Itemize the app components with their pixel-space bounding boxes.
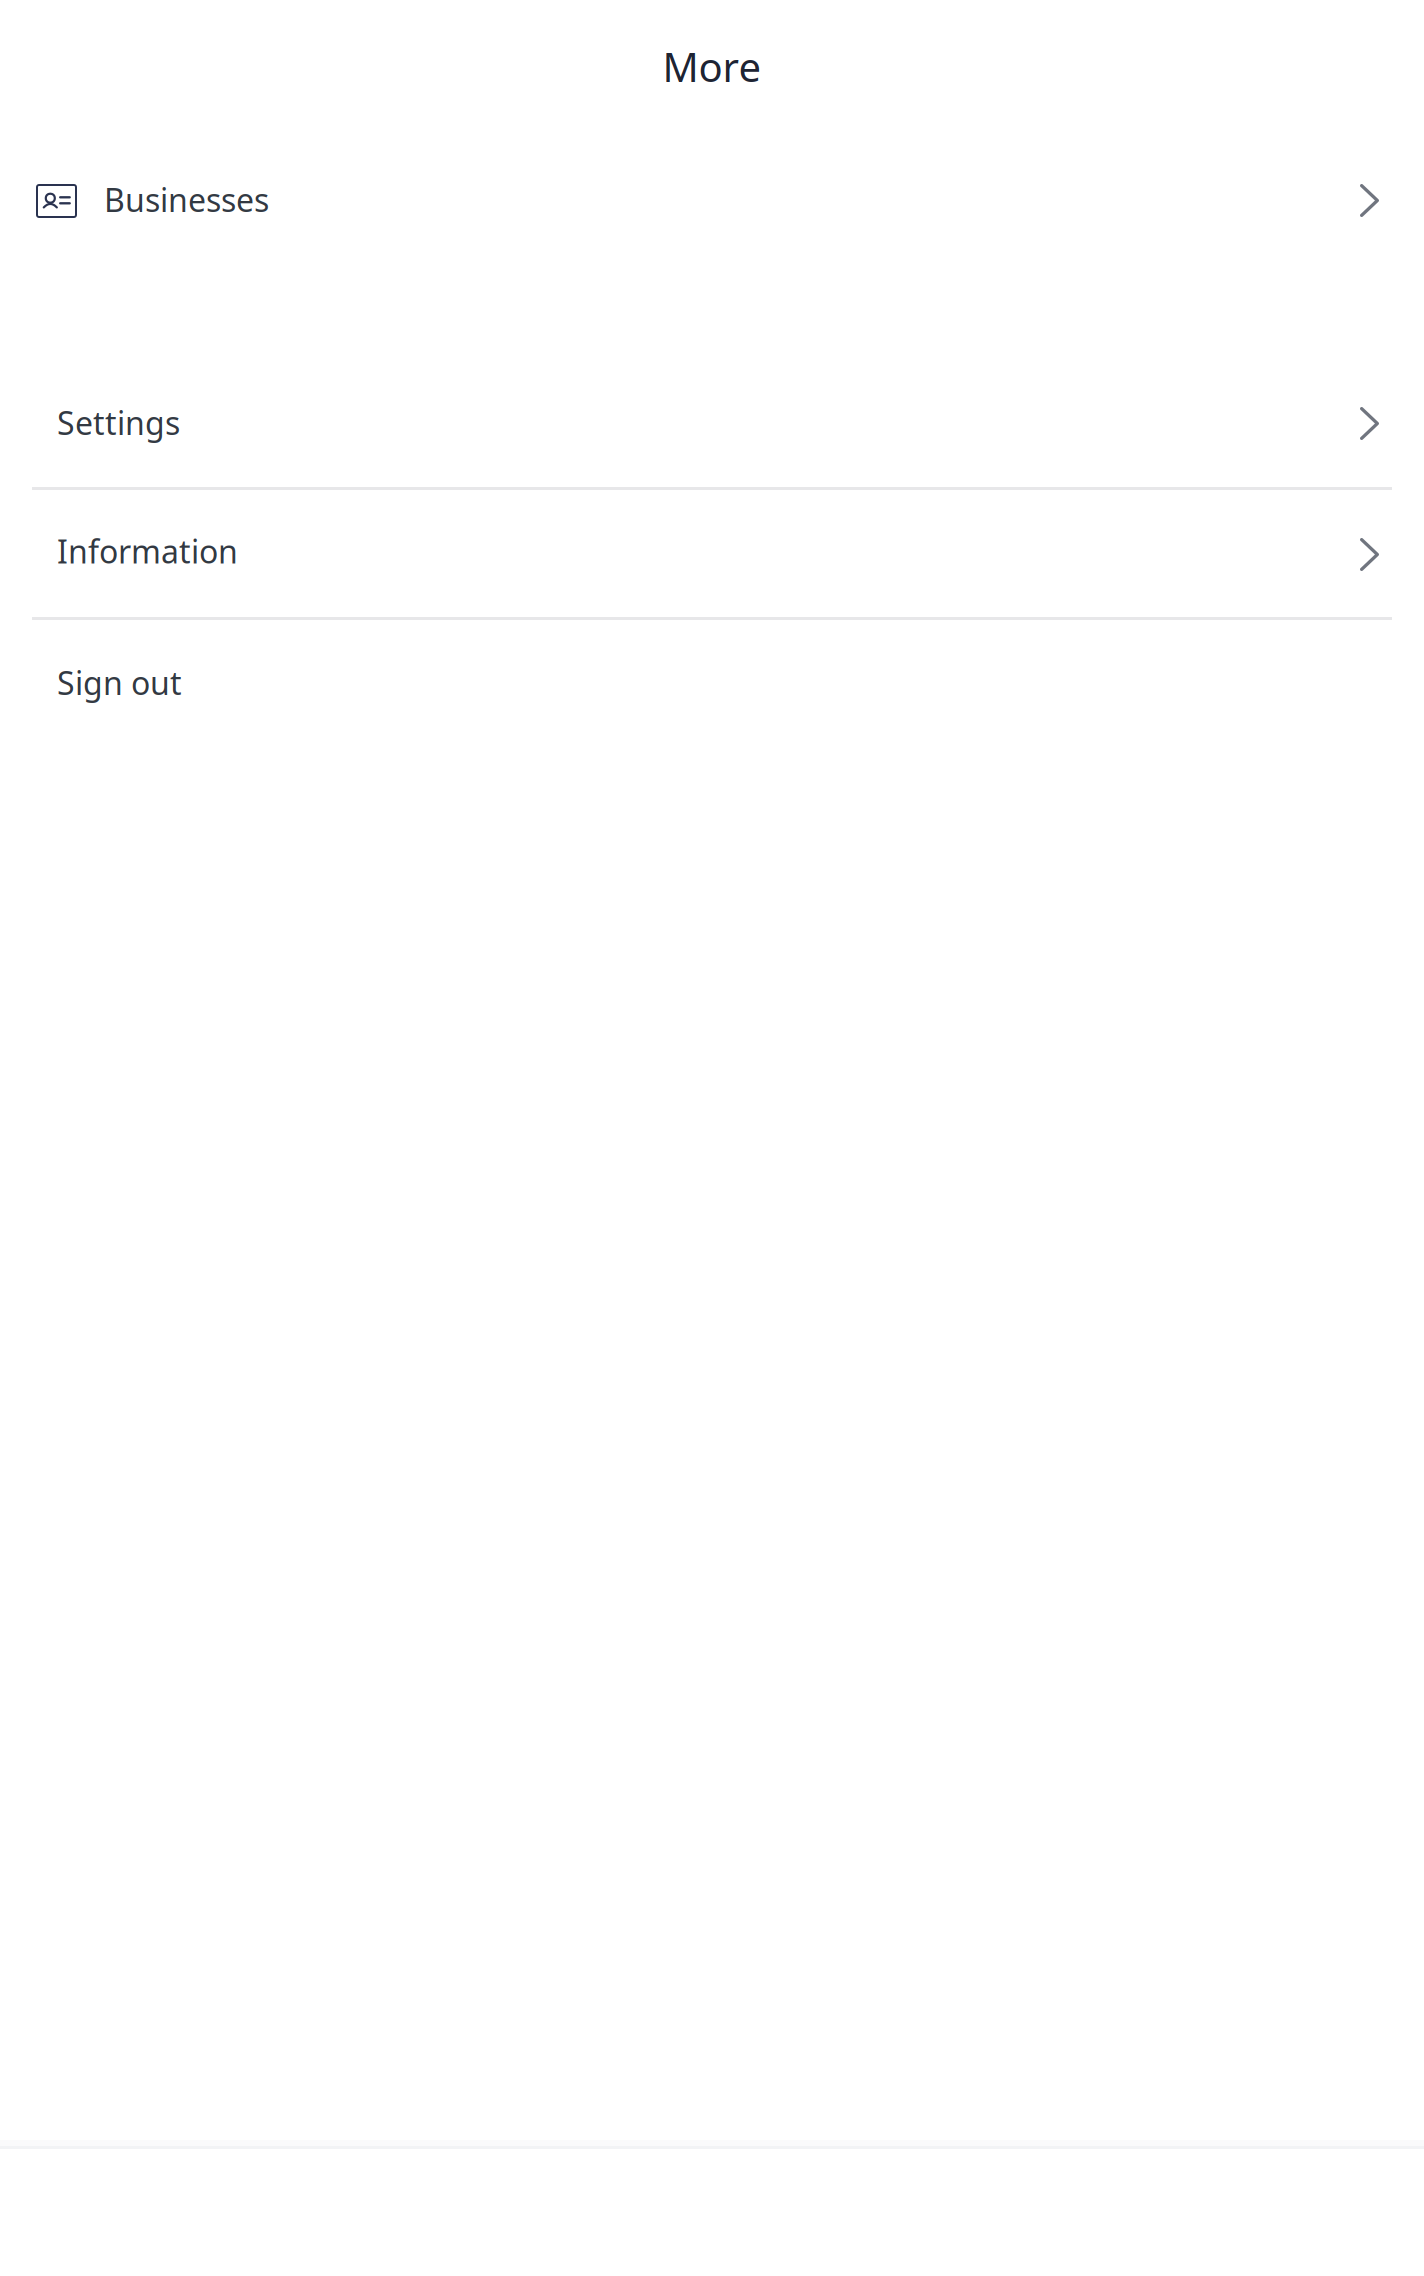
staticText: Sign out bbox=[57, 661, 182, 704]
button[interactable]: Businesses bbox=[0, 133, 1424, 265]
staticText: Businesses bbox=[104, 178, 269, 221]
staticText: More bbox=[662, 40, 761, 93]
staticText: Information bbox=[57, 530, 238, 572]
button[interactable]: Sign out bbox=[0, 620, 1424, 744]
button[interactable]: Information bbox=[0, 490, 1424, 617]
button[interactable]: Settings bbox=[0, 355, 1424, 487]
staticText: Settings bbox=[57, 401, 180, 444]
